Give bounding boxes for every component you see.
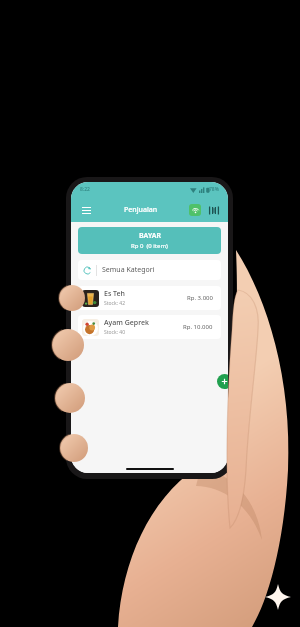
staticText: 8:22: [80, 186, 90, 193]
staticText: Penjualan: [124, 205, 158, 215]
staticText: Stock: 42: [104, 300, 126, 307]
staticText: Rp 0 (0 item): [131, 242, 168, 250]
button[interactable]: Semua Kategori: [78, 260, 221, 280]
button[interactable]: Add item: [217, 374, 228, 389]
button[interactable]: Open navigation menu: [78, 202, 94, 218]
button[interactable]: Ayam Geprek: [78, 315, 221, 339]
button[interactable]: Connection status: [189, 204, 201, 216]
staticText: Ayam Geprek: [104, 318, 149, 328]
staticText: Rp. 3.000: [187, 294, 213, 302]
staticText: Semua Kategori: [102, 265, 155, 275]
staticText: 78%: [209, 186, 219, 193]
button[interactable]: BAYAR: [78, 227, 221, 254]
staticText: BAYAR: [139, 231, 161, 241]
staticText: Es Teh: [104, 289, 125, 299]
staticText: Stock: 40: [104, 329, 126, 336]
staticText: Rp. 10.000: [183, 323, 213, 331]
button[interactable]: Es Teh: [78, 286, 221, 310]
button[interactable]: Scan barcode: [207, 203, 221, 217]
